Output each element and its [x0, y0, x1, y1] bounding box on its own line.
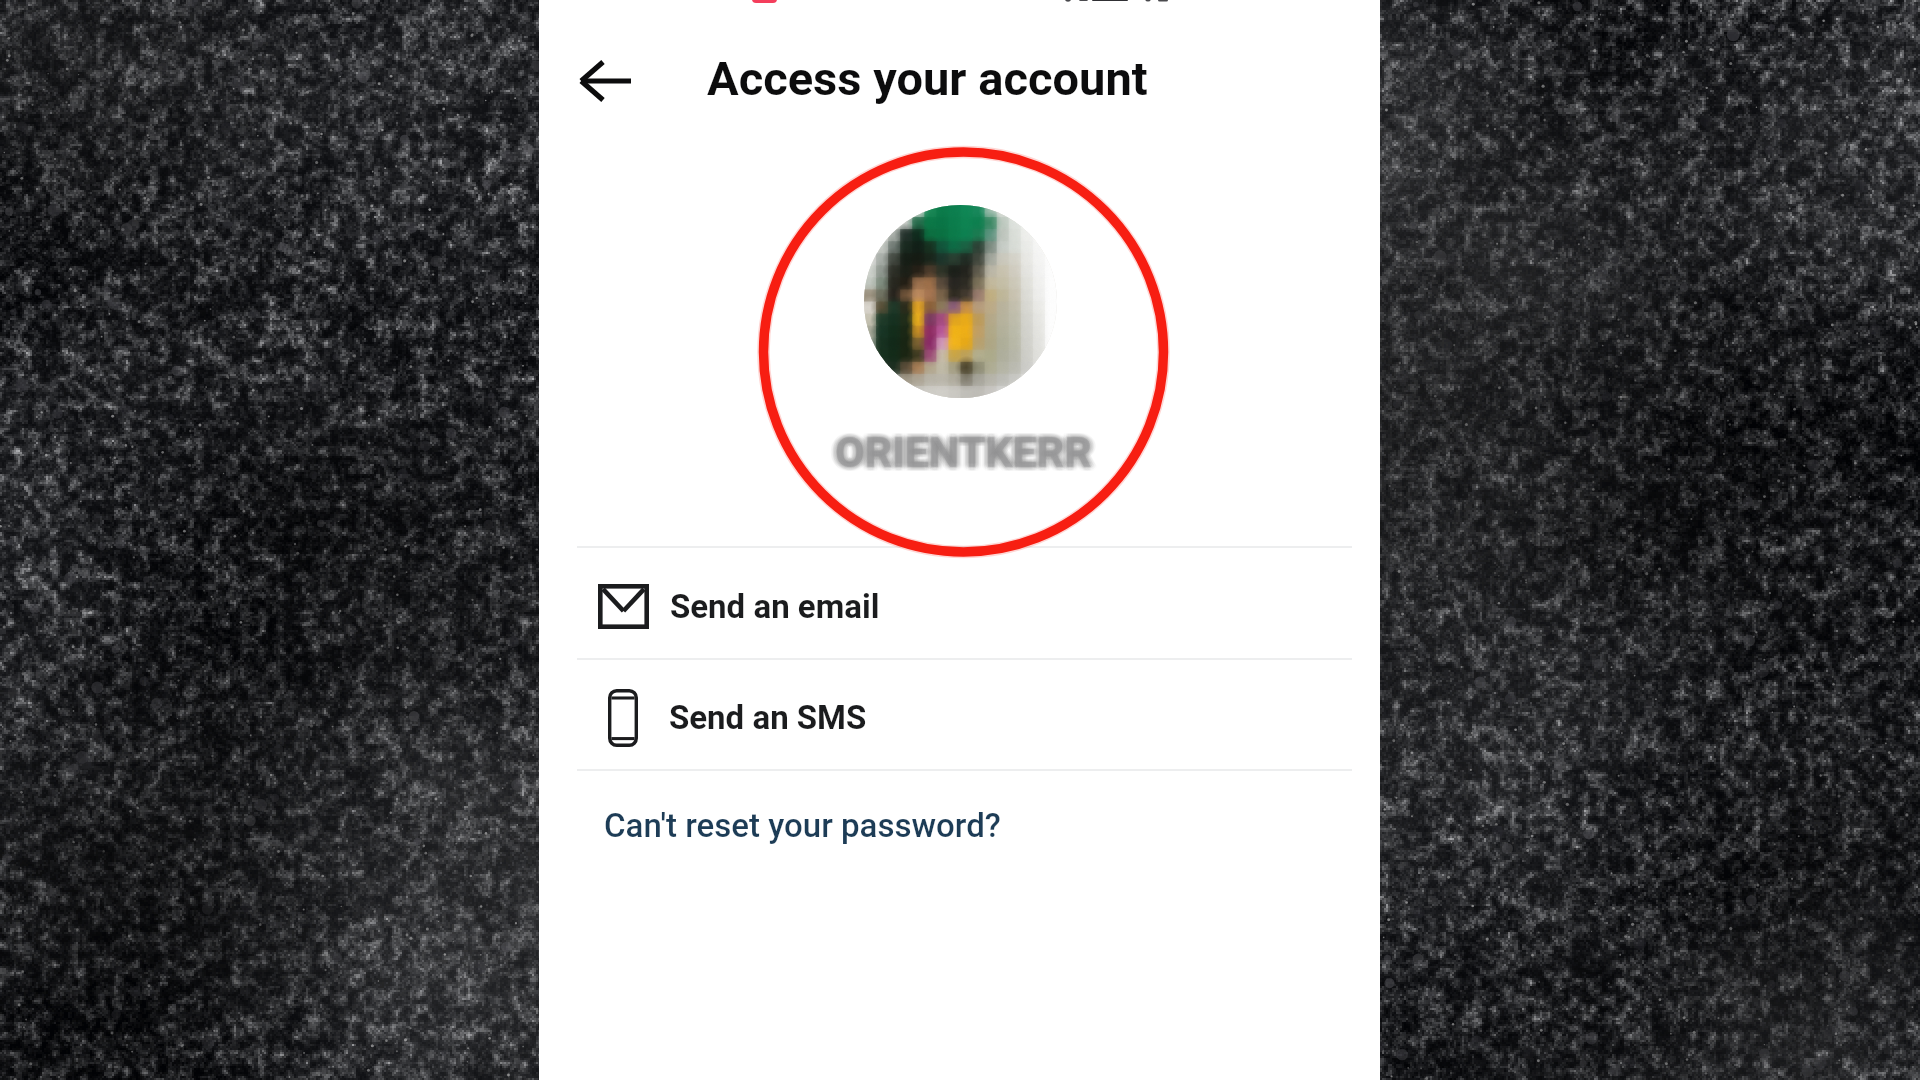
staticText: ORIENTKERR [838, 431, 1095, 481]
staticText: ORIENTKERR [836, 426, 1093, 476]
staticText: ORIENTKERR [833, 427, 1090, 477]
staticText: ORIENTKERR [839, 426, 1096, 476]
staticText: ORIENTKERR [832, 423, 1089, 473]
staticText: Send an SMS [669, 698, 867, 737]
staticText: ORIENTKERR [840, 425, 1097, 475]
staticText: ORIENTKERR [834, 431, 1091, 481]
staticText: ORIENTKERR [835, 428, 1092, 478]
staticText: Can't reset your password? [604, 806, 1001, 845]
staticText: ORIENTKERR [829, 427, 1086, 477]
staticText: ORIENTKERR [841, 426, 1098, 476]
staticText: ORIENTKERR [835, 430, 1092, 480]
button[interactable]: Can't reset your password? [539, 771, 1380, 879]
staticText: ORIENTKERR [834, 428, 1091, 478]
staticText: ORIENTKERR [839, 430, 1096, 480]
staticText: ORIENTKERR [838, 423, 1095, 473]
staticText: Send an email [670, 587, 880, 626]
staticText: ORIENTKERR [830, 429, 1087, 479]
staticText: ORIENTKERR [835, 431, 1092, 481]
staticText: ORIENTKERR [835, 426, 1092, 476]
staticText: ORIENTKERR [841, 427, 1098, 477]
staticText: ORIENTKERR [834, 430, 1091, 480]
staticText: Access your account [707, 51, 1148, 106]
staticText: ORIENTKERR [839, 427, 1096, 477]
staticText: ORIENTKERR [829, 426, 1086, 476]
staticText: ORIENTKERR [836, 430, 1093, 480]
staticText: ORIENTKERR [830, 425, 1087, 475]
staticText: ORIENTKERR [836, 424, 1093, 474]
staticText: ORIENTKERR [841, 428, 1098, 478]
staticText: ORIENTKERR [838, 429, 1095, 479]
button[interactable]: Back [571, 47, 639, 115]
staticText: ORIENTKERR [834, 426, 1091, 476]
staticText: ORIENTKERR [836, 428, 1093, 478]
button[interactable]: Send an SMS [539, 663, 1380, 772]
button[interactable]: Send an email [539, 551, 1380, 661]
staticText: ORIENTKERR [831, 430, 1088, 480]
staticText: ORIENTKERR [835, 427, 1092, 477]
button[interactable]: Profile photo [864, 205, 1057, 398]
staticText: ORIENTKERR [834, 424, 1091, 474]
staticText: ORIENTKERR [837, 427, 1094, 477]
staticText: ORIENTKERR [836, 431, 1093, 481]
staticText: ORIENTKERR [835, 424, 1092, 474]
staticText: ORIENTKERR [839, 424, 1096, 474]
staticText: ORIENTKERR [840, 429, 1097, 479]
staticText: ORIENTKERR [832, 429, 1089, 479]
staticText: ORIENTKERR [832, 425, 1089, 475]
staticText: ORIENTKERR [838, 425, 1095, 475]
staticText: ORIENTKERR [831, 427, 1088, 477]
staticText: ORIENTKERR [835, 423, 1092, 473]
staticText: ORIENTKERR [831, 426, 1088, 476]
staticText: ORIENTKERR [829, 428, 1086, 478]
staticText: ORIENTKERR [832, 431, 1089, 481]
staticText: ORIENTKERR [831, 428, 1088, 478]
staticText: ORIENTKERR [839, 428, 1096, 478]
staticText: ORIENTKERR [831, 424, 1088, 474]
staticText: ORIENTKERR [834, 423, 1091, 473]
staticText: ORIENTKERR [836, 423, 1093, 473]
